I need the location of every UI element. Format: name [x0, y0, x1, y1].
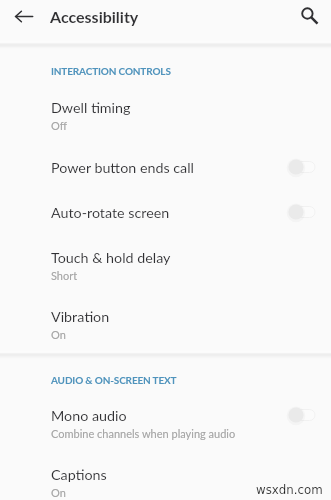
staticText: Dwell timing [51, 99, 131, 116]
button[interactable]: Captions [0, 456, 331, 500]
staticText: Off [51, 119, 68, 132]
staticText: AUDIO & ON-SCREEN TEXT [51, 374, 177, 386]
button[interactable]: Mono audio [0, 397, 331, 457]
staticText: Vibration [51, 308, 110, 325]
staticText: On [51, 486, 66, 499]
button[interactable]: Dwell timing [0, 89, 331, 149]
button[interactable]: Power button ends call [0, 149, 331, 194]
staticText: Mono audio [51, 407, 127, 424]
staticText: Short [51, 269, 78, 282]
button[interactable]: Back [4, 4, 29, 29]
staticText: Auto-rotate screen [51, 204, 170, 221]
staticText: INTERACTION CONTROLS [51, 65, 171, 77]
staticText: Touch & hold delay [51, 249, 171, 266]
button[interactable]: Vibration [0, 298, 331, 358]
staticText: Combine channels when playing audio [51, 427, 236, 440]
button[interactable]: Accessibility [46, 0, 146, 33]
button[interactable]: Touch & hold delay [0, 239, 331, 299]
button[interactable]: Search [296, 2, 324, 30]
staticText: Accessibility [50, 7, 139, 26]
staticText: Power button ends call [51, 159, 194, 176]
button[interactable]: Auto-rotate screen [0, 194, 331, 239]
staticText: wsxdn.com [256, 483, 323, 497]
staticText: On [51, 328, 66, 341]
staticText: Captions [51, 466, 107, 483]
